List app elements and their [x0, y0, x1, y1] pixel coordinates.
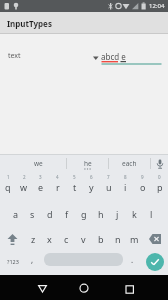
staticText: q — [5, 181, 11, 193]
button[interactable] — [151, 155, 168, 172]
staticText: we — [34, 159, 43, 168]
staticText: text — [8, 51, 21, 61]
staticText: r — [56, 181, 60, 193]
staticText: o — [140, 181, 146, 193]
staticText: d — [47, 208, 53, 220]
button[interactable]: q — [0, 180, 16, 194]
staticText: k — [132, 208, 137, 220]
button[interactable]: z — [25, 231, 41, 247]
staticText: a — [13, 208, 19, 220]
staticText: f — [65, 208, 69, 220]
staticText: b — [98, 233, 104, 245]
button[interactable]: ?123 — [0, 250, 25, 272]
staticText: z — [31, 233, 36, 245]
button[interactable]: j — [109, 207, 126, 221]
button[interactable]: e — [32, 180, 49, 194]
button[interactable]: each — [109, 155, 150, 172]
staticText: 8 — [124, 174, 127, 180]
button[interactable]: f — [58, 207, 75, 221]
staticText: , — [31, 254, 34, 265]
staticText: p — [157, 181, 163, 193]
staticText: i — [124, 181, 127, 193]
button[interactable] — [44, 253, 123, 266]
staticText: 6 — [90, 174, 93, 180]
button[interactable]: we — [0, 155, 66, 172]
button[interactable] — [88, 46, 164, 64]
button[interactable]: h — [92, 207, 109, 221]
button[interactable]: , — [25, 250, 39, 272]
button[interactable]: d — [41, 207, 58, 221]
button[interactable]: . — [126, 250, 138, 272]
button[interactable]: u — [100, 180, 117, 194]
staticText: s — [30, 208, 35, 220]
button[interactable]: he — [67, 155, 108, 172]
staticText: he — [84, 159, 92, 168]
button[interactable] — [146, 253, 164, 271]
staticText: m — [130, 233, 139, 245]
button[interactable]: m — [126, 231, 143, 247]
staticText: . — [131, 254, 134, 265]
button[interactable]: x — [41, 231, 58, 247]
staticText: x — [47, 233, 52, 245]
button[interactable]: r — [49, 180, 66, 194]
button[interactable]: b — [92, 231, 109, 247]
staticText: 12:04 — [149, 2, 165, 10]
button[interactable]: c — [58, 231, 75, 247]
staticText: 7 — [107, 174, 110, 180]
staticText: 3 — [39, 174, 42, 180]
staticText: j — [116, 208, 119, 220]
button[interactable]: l — [143, 207, 160, 221]
button[interactable]: s — [24, 207, 41, 221]
staticText: c — [64, 233, 69, 245]
button[interactable] — [73, 276, 96, 299]
button[interactable] — [117, 276, 140, 299]
button[interactable]: n — [109, 231, 126, 247]
staticText: each — [122, 159, 137, 168]
staticText: v — [81, 233, 86, 245]
staticText: ?123 — [7, 258, 19, 265]
button[interactable]: k — [126, 207, 143, 221]
button[interactable]: o — [134, 180, 151, 194]
button[interactable] — [31, 276, 54, 299]
staticText: 2 — [23, 174, 26, 180]
staticText: n — [115, 233, 121, 245]
button[interactable] — [143, 231, 168, 247]
button[interactable]: p — [151, 180, 168, 194]
staticText: g — [81, 208, 87, 220]
button[interactable]: t — [66, 180, 83, 194]
button[interactable]: g — [75, 207, 92, 221]
staticText: 0 — [158, 174, 161, 180]
staticText: h — [98, 208, 104, 220]
button[interactable] — [0, 231, 25, 247]
staticText: 4 — [56, 174, 59, 180]
staticText: t — [73, 181, 77, 193]
staticText: y — [89, 181, 94, 193]
staticText: 9 — [141, 174, 144, 180]
staticText: w — [20, 181, 28, 193]
staticText: 1 — [7, 174, 10, 180]
button[interactable]: y — [83, 180, 100, 194]
staticText: InputTypes — [7, 18, 52, 29]
button[interactable]: v — [75, 231, 92, 247]
staticText: e — [38, 181, 44, 193]
button[interactable]: w — [16, 180, 32, 194]
button[interactable]: i — [117, 180, 134, 194]
staticText: u — [106, 181, 112, 193]
button[interactable]: a — [8, 207, 24, 221]
staticText: l — [150, 208, 153, 220]
staticText: 5 — [73, 174, 76, 180]
staticText: abcd e — [101, 51, 126, 62]
